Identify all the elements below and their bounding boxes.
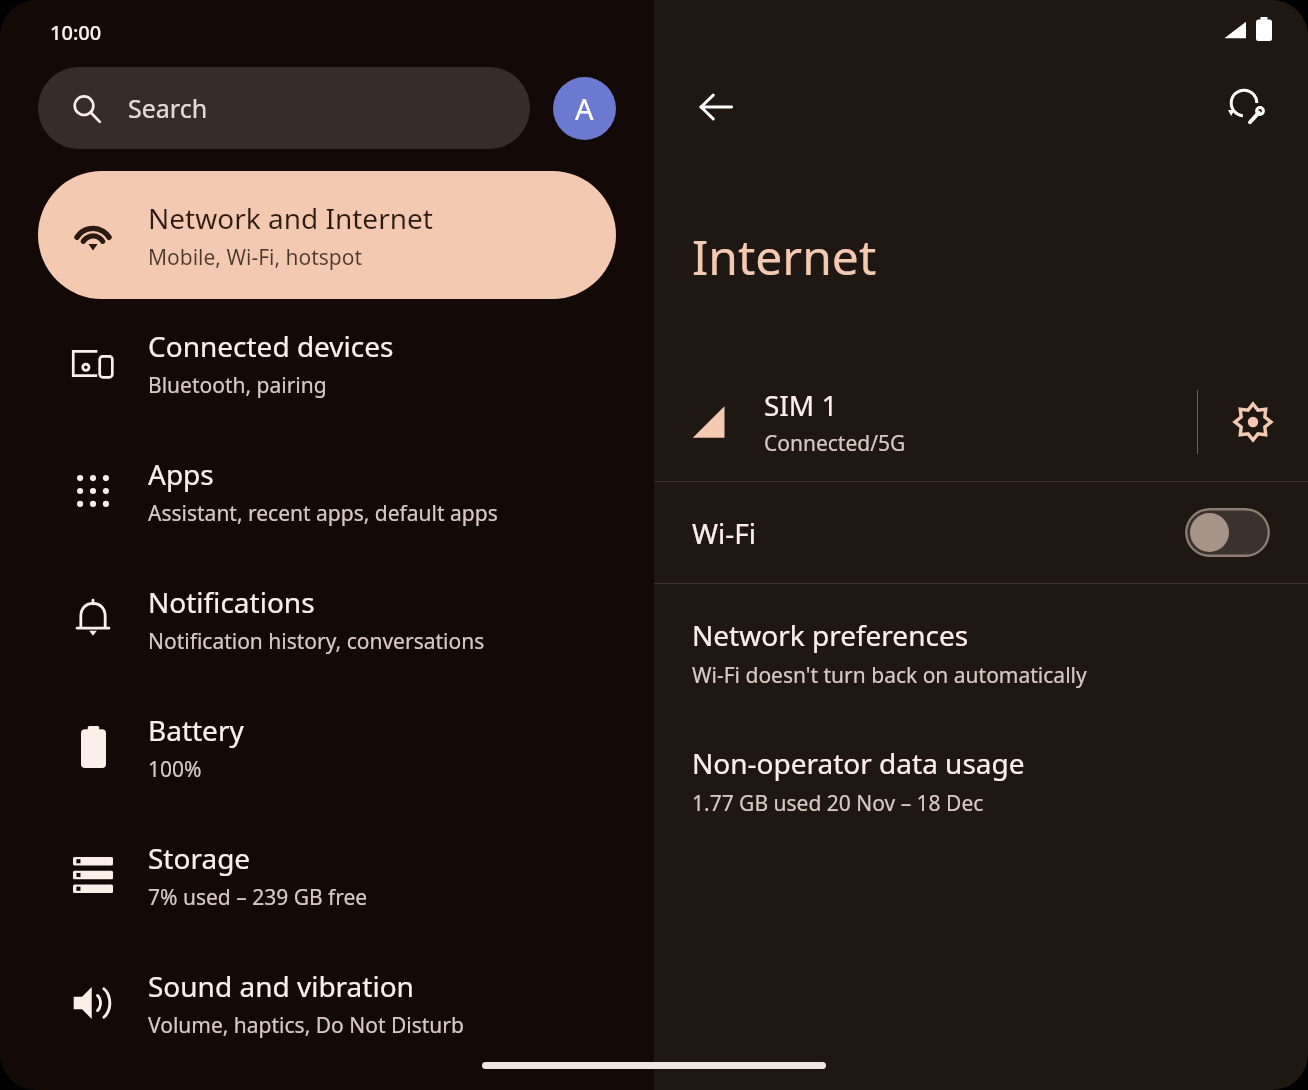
staticText: Storage (148, 839, 251, 877)
staticText: Notification history, conversations (148, 627, 485, 656)
staticText: Network and Internet (148, 199, 433, 237)
button[interactable]: Search (38, 67, 530, 149)
button[interactable]: Network and Internet (38, 171, 616, 299)
button[interactable]: Apps (38, 427, 616, 555)
button[interactable]: Network preferences (654, 610, 1308, 696)
button[interactable]: Account (553, 77, 616, 140)
button[interactable]: Troubleshoot (1218, 79, 1274, 135)
button[interactable]: Sound and vibration (38, 939, 616, 1067)
staticText: 1.77 GB used 20 Nov – 18 Dec (692, 789, 984, 818)
button[interactable]: Battery (38, 683, 616, 811)
staticText: Notifications (148, 583, 315, 621)
staticText: Connected/5G (764, 429, 906, 458)
staticText: Connected devices (148, 327, 394, 365)
button[interactable]: Storage (38, 811, 616, 939)
button[interactable]: Back (688, 79, 744, 135)
staticText: Apps (148, 455, 214, 493)
staticText: Wi-Fi doesn't turn back on automatically (692, 661, 1087, 690)
staticText: Sound and vibration (148, 967, 414, 1005)
staticText: Wi-Fi (692, 514, 1185, 552)
staticText: Battery (148, 711, 244, 749)
staticText: Volume, haptics, Do Not Disturb (148, 1011, 464, 1040)
button[interactable]: SIM 1 (654, 363, 1308, 481)
staticText: Mobile, Wi-Fi, hotspot (148, 243, 363, 272)
button[interactable]: Wi-Fi (654, 482, 1308, 583)
staticText: Search (128, 91, 208, 125)
staticText: A (575, 89, 594, 128)
staticText: Network preferences (692, 616, 969, 654)
button[interactable]: Connected devices (38, 299, 616, 427)
button[interactable]: Notifications (38, 555, 616, 683)
button[interactable]: Non-operator data usage (654, 738, 1308, 824)
staticText: SIM 1 (764, 386, 838, 424)
staticText: 7% used – 239 GB free (148, 883, 368, 912)
button[interactable]: SIM settings (1198, 363, 1308, 481)
staticText: 10:00 (50, 19, 102, 46)
staticText: Internet (692, 224, 877, 289)
staticText: Bluetooth, pairing (148, 371, 327, 400)
staticText: Non-operator data usage (692, 744, 1025, 782)
staticText: Assistant, recent apps, default apps (148, 499, 498, 528)
staticText: 100% (148, 755, 202, 784)
